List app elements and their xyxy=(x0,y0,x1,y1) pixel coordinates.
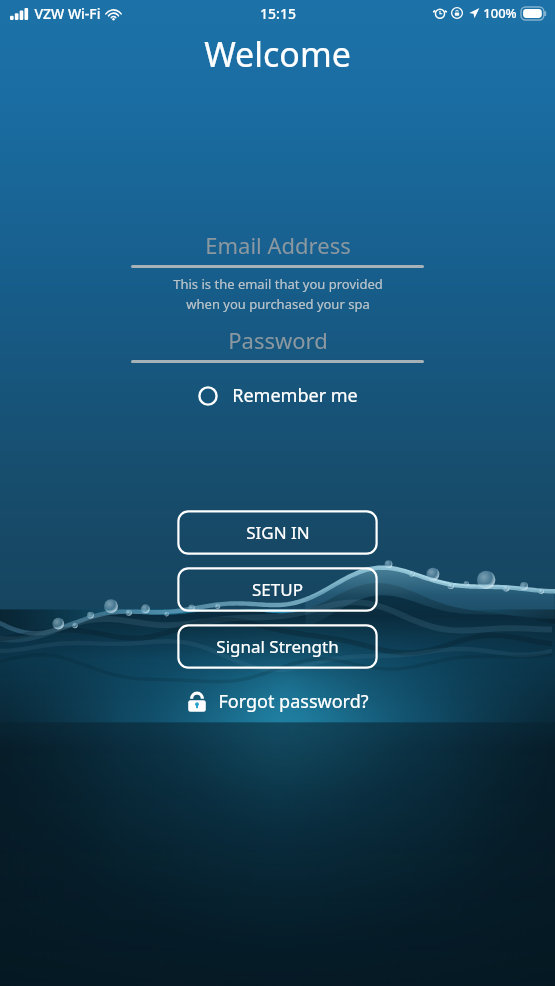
staticText: VZW Wi-Fi xyxy=(34,4,101,23)
button[interactable]: SIGN IN xyxy=(177,510,378,555)
button[interactable]: Signal Strength xyxy=(177,624,378,669)
staticText: SIGN IN xyxy=(246,521,310,544)
button[interactable]: Email Address xyxy=(131,230,424,260)
staticText: Password xyxy=(228,325,328,355)
staticText: SETUP xyxy=(252,578,303,601)
staticText: Forgot password? xyxy=(218,689,369,714)
button[interactable]: SETUP xyxy=(177,567,378,612)
staticText: This is the email that you provided xyxy=(173,275,383,293)
staticText: Remember me xyxy=(232,383,358,408)
staticText: 15:15 xyxy=(260,4,296,23)
button[interactable]: Remember me xyxy=(192,379,364,412)
staticText: when you purchased your spa xyxy=(186,295,370,313)
staticText: Signal Strength xyxy=(216,635,339,658)
other: Forgot password xyxy=(186,691,208,713)
button[interactable]: Forgot password xyxy=(178,685,377,718)
staticText: Welcome xyxy=(204,31,351,77)
staticText: 100% xyxy=(483,4,517,22)
staticText: Email Address xyxy=(205,230,351,260)
button[interactable]: Password xyxy=(131,325,424,355)
